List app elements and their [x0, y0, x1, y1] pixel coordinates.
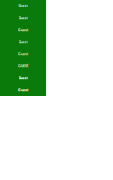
- staticText: Guest: [18, 88, 28, 92]
- staticText: Guest: [18, 64, 28, 68]
- staticText: Guest: [18, 16, 27, 20]
- staticText: Guest: [18, 28, 28, 32]
- staticText: Guest: [18, 40, 27, 44]
- staticText: Guest: [18, 52, 28, 56]
- staticText: Guest: [18, 4, 27, 8]
- staticText: Guest: [18, 76, 27, 80]
